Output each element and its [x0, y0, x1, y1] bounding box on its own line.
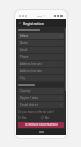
button[interactable]: Address line two	[18, 68, 64, 74]
staticText: Phone	[20, 55, 29, 59]
staticText: Country	[20, 89, 60, 93]
button[interactable]: Back	[16, 19, 66, 27]
button[interactable]: Email	[18, 47, 64, 53]
button[interactable]: Address line one	[18, 61, 64, 67]
staticText: Postal district	[20, 103, 60, 107]
button[interactable]: Home	[39, 131, 44, 133]
staticText: City	[20, 76, 25, 80]
staticText: Email	[20, 48, 28, 52]
button[interactable]: Country	[18, 88, 64, 94]
staticText: Registration	[23, 21, 44, 26]
staticText: Region / state	[20, 96, 60, 100]
staticText: Address line two	[20, 69, 42, 73]
button[interactable]: Back	[18, 21, 22, 25]
button[interactable]: Name	[18, 40, 64, 46]
staticText: Do you have a referral code?	[18, 110, 54, 114]
button[interactable]: Select	[18, 33, 64, 39]
button[interactable]: CONTINUE REGISTRATION	[18, 122, 64, 128]
button[interactable]: Yes	[18, 115, 41, 120]
button[interactable]: Region / state	[18, 95, 64, 101]
staticText: Address line one	[20, 62, 42, 66]
button[interactable]: Postal district	[18, 102, 64, 108]
staticText: Select	[20, 34, 60, 38]
staticText: CONTINUE REGISTRATION	[25, 123, 58, 127]
button[interactable]: Phone	[18, 54, 64, 60]
staticText: Yes	[22, 116, 27, 120]
button[interactable]: No	[41, 115, 64, 120]
staticText: No	[45, 116, 49, 120]
staticText: Name	[20, 41, 28, 45]
button[interactable]: City	[18, 75, 64, 81]
